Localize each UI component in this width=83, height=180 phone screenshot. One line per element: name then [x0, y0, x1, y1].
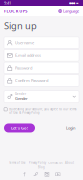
staticText: Sign up	[4, 19, 37, 32]
button[interactable]: YouTube	[54, 171, 62, 178]
staticText: Gender	[15, 96, 28, 101]
button[interactable]: Facebook	[21, 171, 29, 178]
button[interactable]: Let's Go !	[4, 123, 35, 132]
staticText: Gender	[15, 92, 26, 96]
staticText: Terms of Use	[9, 161, 26, 164]
button[interactable]: Password	[4, 62, 79, 74]
staticText: By creating your account, you agree to o…	[9, 107, 76, 114]
staticText: Login	[66, 125, 75, 131]
button[interactable]: Terms of Use	[9, 161, 26, 164]
staticText: Username	[15, 40, 34, 45]
button[interactable]: Language	[58, 8, 79, 14]
staticText: ●●● ▬	[69, 1, 79, 4]
button[interactable]: Instagram	[43, 171, 51, 178]
button[interactable]: Confirm Password	[4, 75, 79, 86]
button[interactable]: By creating your account, you agree to o…	[4, 107, 79, 114]
button[interactable]: Contact us	[48, 161, 62, 164]
staticText: E-mail address	[15, 53, 41, 58]
button[interactable]: FLOCKUPS	[4, 8, 27, 14]
button[interactable]: Login	[62, 123, 79, 132]
button[interactable]: Blog	[38, 166, 45, 169]
button[interactable]: E-mail address	[4, 49, 79, 61]
button[interactable]: Username	[4, 37, 79, 48]
staticText: Blog	[38, 166, 45, 169]
button[interactable]: About	[65, 161, 74, 164]
staticText: About	[65, 161, 74, 164]
staticText: Let's Go !	[11, 125, 28, 131]
button[interactable]: Twitter	[32, 171, 40, 178]
button[interactable]: Gender	[4, 91, 79, 102]
staticText: FLOCKUPS	[4, 8, 27, 14]
button[interactable]: Privacy Policy	[29, 161, 46, 164]
staticText: Password	[15, 65, 32, 70]
staticText: Language	[63, 8, 79, 14]
staticText: Privacy Policy	[29, 161, 46, 164]
staticText: Confirm Password	[15, 78, 48, 83]
staticText: 9:41	[4, 0, 11, 6]
staticText: Contact us	[48, 161, 62, 164]
